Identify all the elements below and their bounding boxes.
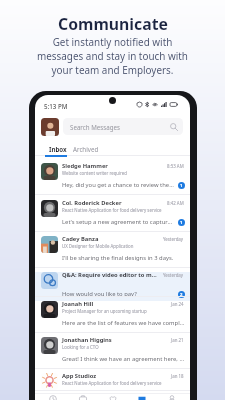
staticText: How would you like to pay? (62, 290, 175, 298)
staticText: 1 (180, 220, 183, 226)
staticText: Looking for a CTO (62, 344, 99, 350)
button[interactable]: Jobs (71, 395, 95, 400)
staticText: I'll be sharing the final designs in 3 d… (62, 254, 185, 262)
button[interactable]: Cadey Banza (35, 236, 190, 272)
staticText: 8:53 AM (167, 163, 184, 169)
button[interactable]: Inbox (45, 145, 71, 153)
staticText: UX Designer for Mobile Application (62, 243, 134, 249)
staticText: Project Manager for an upcoming startup (62, 308, 147, 314)
staticText: Here are the list of features we have co… (62, 319, 185, 327)
staticText: Jan 24 (171, 301, 184, 307)
staticText: Jan 18 (171, 373, 184, 379)
staticText: Col. Roderick Decker (62, 199, 122, 207)
staticText: Hey, did you get a chance to review the … (62, 181, 175, 189)
staticText: Sledge Hammer (62, 162, 108, 170)
staticText: React Native Application for food delive… (62, 207, 162, 213)
staticText: Website content writer required (62, 170, 127, 176)
staticText: Jan 21 (171, 337, 184, 343)
button[interactable]: App Studioz (35, 373, 190, 395)
button[interactable]: Search Messages (63, 118, 183, 135)
staticText: Yesterday (163, 272, 184, 278)
staticText: Joanah Hill (62, 300, 94, 308)
staticText: Yesterday (163, 236, 184, 242)
button[interactable]: Q&A: Require video editor to make a… (35, 272, 190, 302)
button[interactable]: Jonathan Higgins (35, 337, 190, 373)
staticText: Inbox (49, 145, 67, 153)
button[interactable]: Profile (41, 118, 59, 136)
staticText: App Studioz (62, 372, 97, 380)
button[interactable]: Archived (69, 145, 103, 153)
staticText: 8:42 AM (167, 200, 184, 206)
staticText: Archived (73, 145, 99, 153)
staticText: Jonathan Higgins (62, 336, 112, 344)
button[interactable]: Col. Roderick Decker (35, 200, 190, 236)
staticText: Search Messages (70, 123, 120, 131)
staticText: Q&A: Require video editor to make a… (62, 271, 160, 279)
button[interactable]: Sledge Hammer (35, 163, 190, 200)
staticText: React Native Application for food delive… (62, 380, 162, 386)
button[interactable]: Saved (101, 395, 125, 400)
staticText: Great! I think we have an agreement here… (62, 355, 185, 363)
staticText: Communicate (58, 13, 168, 35)
staticText: 2 (180, 292, 183, 298)
staticText: 5:13 PM (44, 102, 68, 110)
staticText: Get instantly notified with messages and… (37, 35, 188, 77)
button[interactable]: Home (41, 395, 65, 400)
staticText: Cadey Banza (62, 235, 99, 243)
button[interactable]: Messages (130, 395, 154, 400)
staticText: 1 (180, 183, 183, 189)
button[interactable]: Joanah Hill (35, 301, 190, 337)
button[interactable]: Profile (160, 395, 184, 400)
staticText: Let's setup a new agreement to capture t… (62, 218, 175, 226)
